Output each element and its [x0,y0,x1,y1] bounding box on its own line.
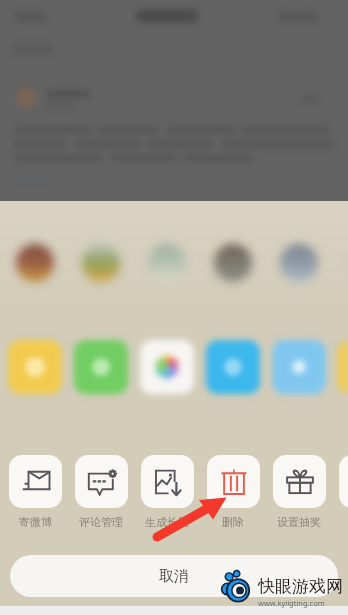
button[interactable]: Contact 1 [14,242,56,284]
staticText: 取消 [159,567,189,586]
staticText: 寄微博 [19,515,52,529]
button[interactable]: 寄微博 [2,455,68,529]
staticText: 评论管理 [79,515,123,529]
staticText: www.kyilgting.com [258,598,325,608]
button[interactable]: Contact 3 [146,242,188,284]
button[interactable]: 设置抽奖 [266,455,332,529]
button[interactable]: Share app 5 [272,340,326,394]
button[interactable]: 取消 [10,555,338,597]
staticText: 生成长图 [145,515,189,529]
button[interactable]: More [332,455,348,515]
staticText: 快眼游戏网 [258,576,343,597]
button[interactable]: Share app 4 [206,340,260,394]
button[interactable]: Contact 4 [212,242,254,284]
button[interactable]: 评论管理 [68,455,134,529]
button[interactable]: Contact 2 [80,242,122,284]
button[interactable]: 生成长图 [134,455,200,529]
staticText: 删除 [222,515,244,529]
button[interactable]: Contact 5 [278,242,320,284]
button[interactable]: Share app 1 [8,340,62,394]
button[interactable]: 删除 [200,455,266,529]
button[interactable]: Share app 2 [74,340,128,394]
staticText: 设置抽奖 [277,515,321,529]
button[interactable]: Share app 3 [140,340,194,394]
